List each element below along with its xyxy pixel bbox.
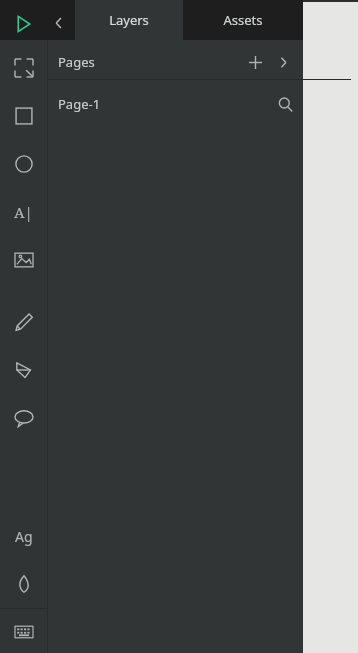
button[interactable]: Add page [241,48,269,76]
button[interactable]: Ag [0,512,47,560]
button[interactable]: Text [0,188,47,236]
button[interactable]: Keyboard [0,608,47,653]
button[interactable]: Back [44,8,74,38]
staticText: Page-1 [58,95,101,113]
staticText: Pages [58,53,95,71]
button[interactable]: Pages [48,44,351,79]
button[interactable]: Assets [183,0,303,40]
button[interactable]: Rectangle [0,92,47,140]
button[interactable]: Comment [0,394,47,442]
button[interactable]: Pen [0,346,47,394]
button[interactable]: Page-1 [48,80,351,128]
button[interactable]: Layers [75,0,183,40]
button[interactable]: Pencil [0,298,47,346]
button[interactable]: Artboard [0,44,47,92]
staticText: A| [14,202,33,222]
button[interactable]: Color [0,560,47,608]
button[interactable]: Ellipse [0,140,47,188]
staticText: Layers [109,11,149,29]
button[interactable]: Select tool [8,8,40,40]
staticText: Ag [15,527,33,546]
staticText: Assets [223,11,263,29]
button[interactable]: Expand pages [269,48,297,76]
button[interactable]: Image [0,236,47,284]
button[interactable]: Search [270,89,300,119]
